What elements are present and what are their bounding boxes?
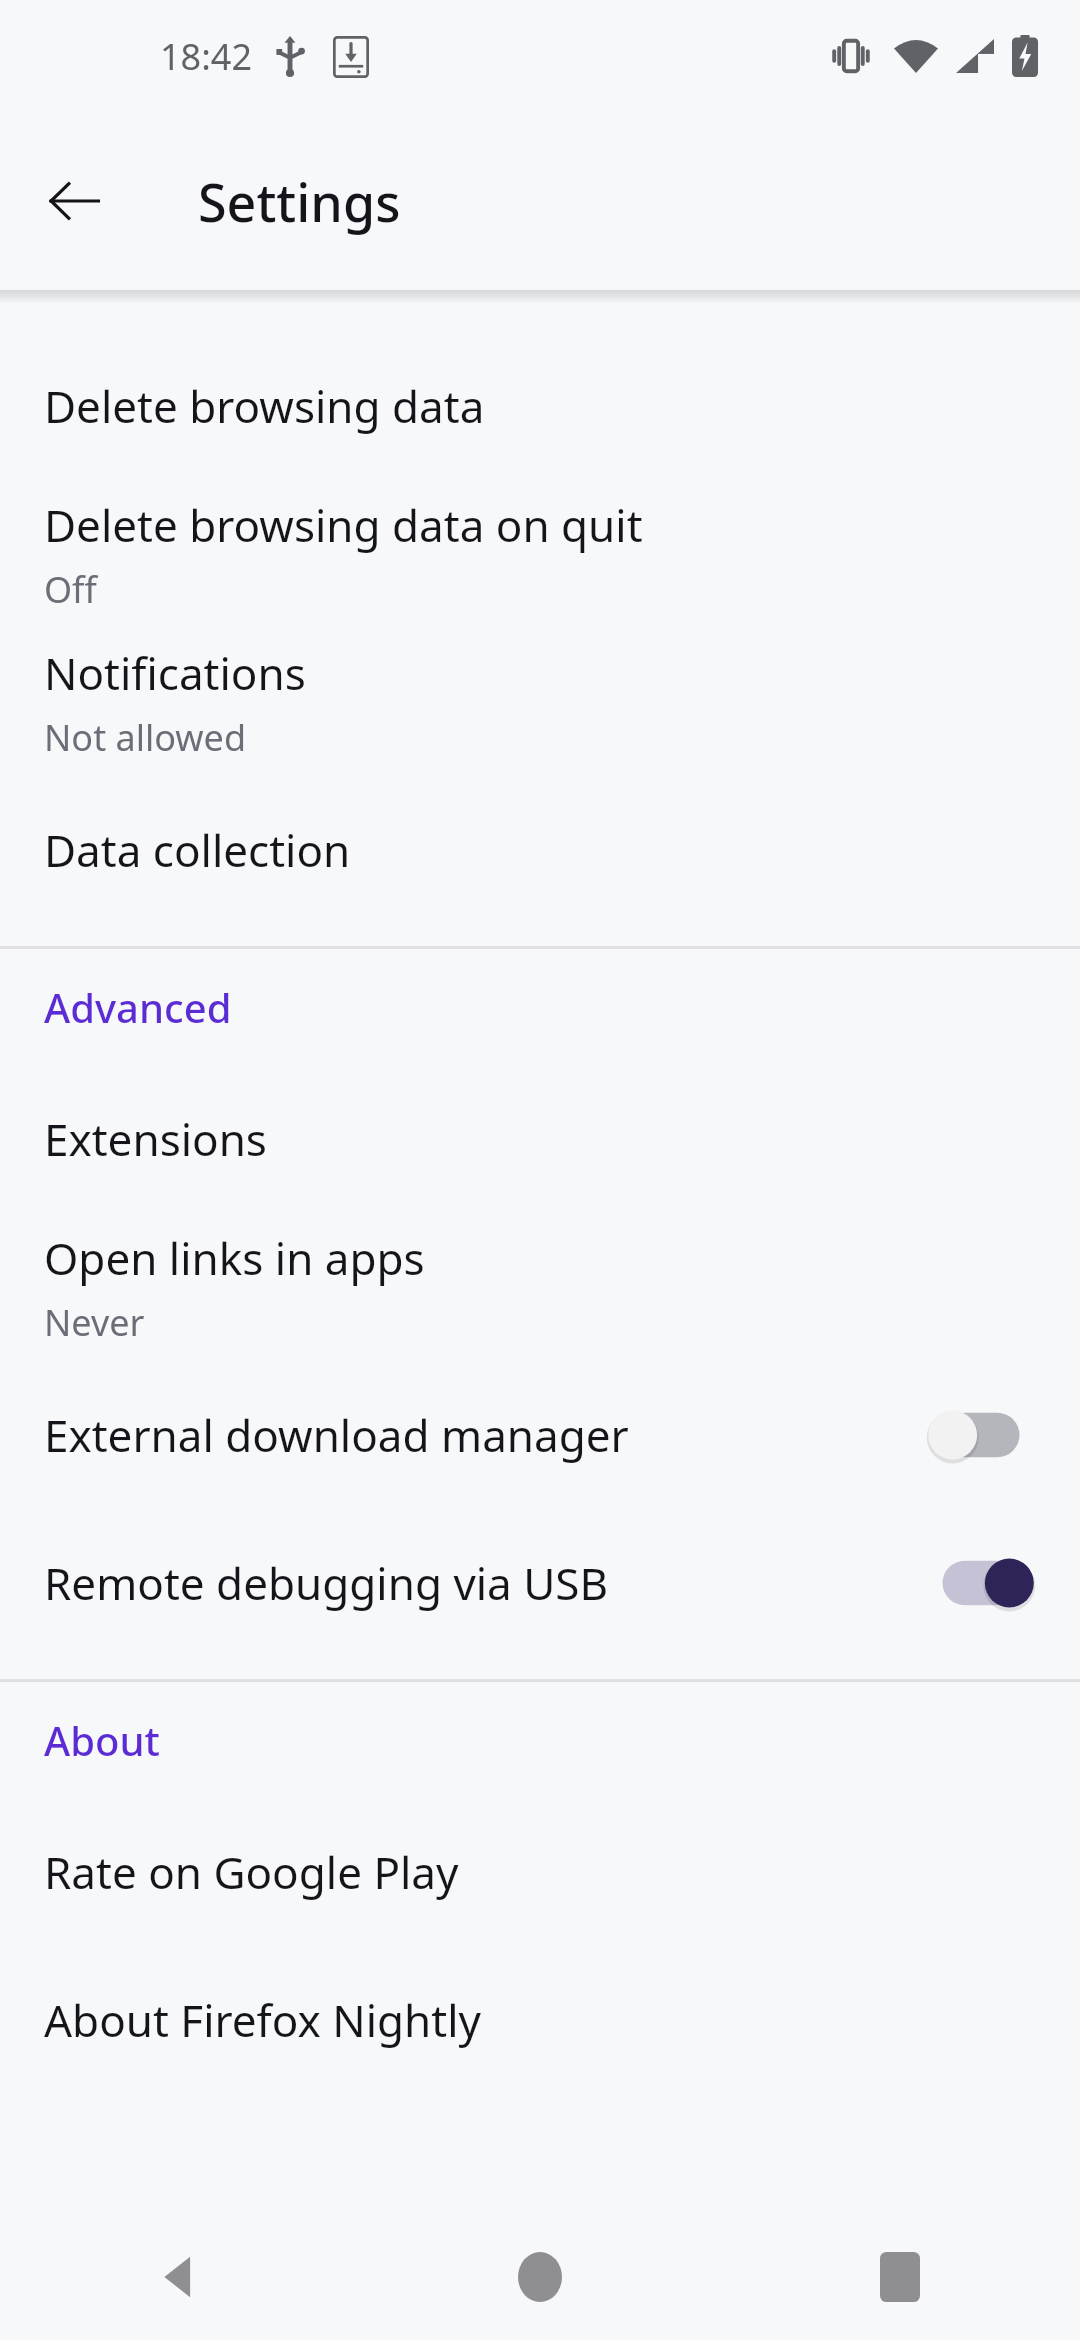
staticText: 18:42 xyxy=(160,32,253,81)
staticText: Extensions xyxy=(44,1109,267,1169)
staticText: Notifications xyxy=(44,643,306,703)
staticText: About xyxy=(44,1713,160,1767)
staticText: Rate on Google Play xyxy=(44,1842,459,1902)
staticText: Open links in apps xyxy=(44,1228,425,1288)
button[interactable]: Enabled xyxy=(926,1547,1036,1619)
button[interactable]: Data collection xyxy=(0,776,1080,924)
staticText: Delete browsing data on quit xyxy=(44,495,643,555)
button[interactable]: Delete browsing data xyxy=(0,332,1080,480)
staticText: External download manager xyxy=(44,1405,629,1465)
button[interactable]: Remote debugging via USB xyxy=(0,1509,1080,1657)
staticText: Not allowed xyxy=(44,713,247,762)
staticText: About Firefox Nightly xyxy=(44,1990,481,2050)
button[interactable]: Delete browsing data on quit xyxy=(0,480,1080,628)
button[interactable]: Back xyxy=(0,2214,360,2340)
staticText: Settings xyxy=(198,166,401,237)
staticText: Delete browsing data xyxy=(44,376,485,436)
button[interactable]: External download manager xyxy=(0,1361,1080,1509)
button[interactable]: About Firefox Nightly xyxy=(0,1946,1080,2094)
staticText: Off xyxy=(44,565,97,614)
button[interactable]: Home xyxy=(360,2214,720,2340)
button[interactable]: Open links in apps xyxy=(0,1213,1080,1361)
button[interactable]: Extensions xyxy=(0,1065,1080,1213)
button[interactable]: Notifications xyxy=(0,628,1080,776)
button[interactable]: Rate on Google Play xyxy=(0,1798,1080,1946)
button[interactable]: Recent apps xyxy=(720,2214,1080,2340)
button[interactable]: Disabled xyxy=(926,1399,1036,1471)
staticText: Data collection xyxy=(44,820,351,880)
button[interactable]: Navigate up xyxy=(26,153,122,249)
staticText: Never xyxy=(44,1298,145,1347)
staticText: Remote debugging via USB xyxy=(44,1553,609,1613)
staticText: Advanced xyxy=(44,980,232,1034)
